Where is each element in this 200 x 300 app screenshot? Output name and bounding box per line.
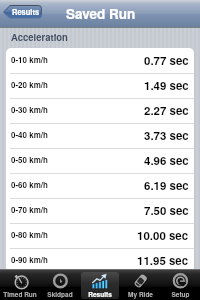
button[interactable]: My Ride (120, 269, 160, 300)
button[interactable]: 0-30 km/h (6, 98, 194, 123)
staticText: 0-10 km/h (11, 54, 48, 65)
button[interactable]: Results (3, 5, 42, 19)
staticText: Results (88, 290, 112, 299)
other: Results (91, 272, 109, 290)
staticText: 0-60 km/h (11, 179, 48, 190)
staticText: 3.73 sec (144, 127, 189, 143)
other: Timed Run (11, 272, 29, 290)
staticText: 6.19 sec (144, 177, 189, 193)
staticText: 0-30 km/h (11, 104, 48, 115)
staticText: 7.50 sec (144, 202, 189, 218)
other: Skidpad (51, 272, 69, 290)
staticText: Acceleration (11, 30, 68, 44)
staticText: Saved Run (66, 4, 136, 23)
button[interactable]: 0-60 km/h (6, 173, 194, 198)
other: Setup (171, 272, 189, 290)
staticText: 0-50 km/h (11, 154, 48, 165)
button[interactable]: 0-50 km/h (6, 148, 194, 173)
button[interactable]: Skidpad (40, 269, 80, 300)
staticText: 0-20 km/h (11, 79, 48, 90)
staticText: 11.95 sec (137, 252, 189, 268)
staticText: 2.27 sec (144, 102, 189, 118)
staticText: Results (12, 7, 40, 18)
button[interactable]: Timed Run (0, 269, 40, 300)
staticText: 0-70 km/h (11, 204, 48, 215)
button[interactable]: 0-90 km/h (6, 248, 194, 273)
staticText: 4.96 sec (144, 152, 189, 168)
button[interactable]: Results (80, 269, 120, 300)
button[interactable]: 0-40 km/h (6, 123, 194, 148)
staticText: 0-40 km/h (11, 129, 48, 140)
staticText: 10.00 sec (137, 227, 189, 243)
staticText: My Ride (128, 290, 153, 299)
staticText: 0-80 km/h (11, 229, 48, 240)
other: My Ride (131, 272, 149, 290)
staticText: Skidpad (47, 290, 73, 299)
staticText: Timed Run (3, 290, 37, 299)
button[interactable]: 0-20 km/h (6, 73, 194, 98)
staticText: 0.77 sec (144, 52, 189, 68)
button[interactable]: 0-10 km/h (6, 48, 194, 73)
button[interactable]: 0-80 km/h (6, 223, 194, 248)
button[interactable]: Setup (160, 269, 200, 300)
button[interactable]: 0-70 km/h (6, 198, 194, 223)
staticText: 1.49 sec (144, 77, 189, 93)
staticText: Setup (171, 290, 190, 299)
staticText: 0-90 km/h (11, 254, 48, 265)
